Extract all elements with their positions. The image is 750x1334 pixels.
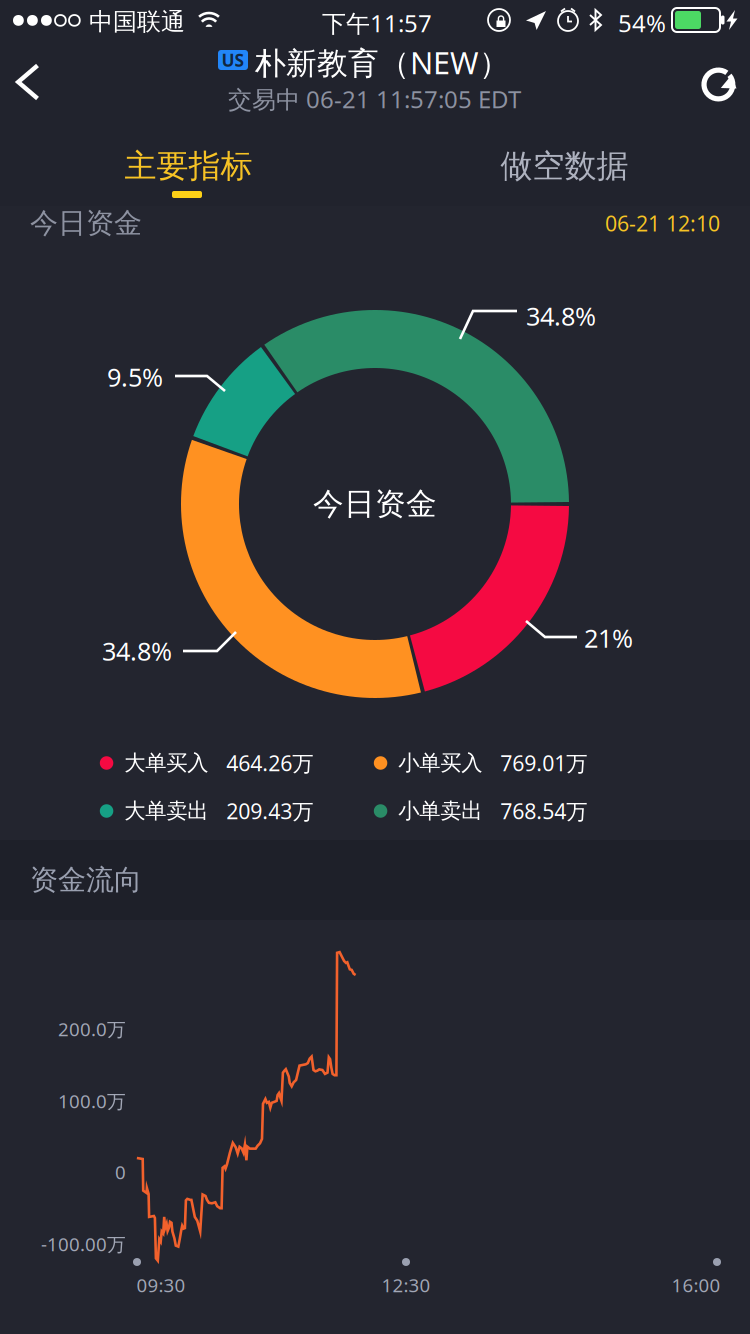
staticText: 小单买入 (398, 750, 482, 776)
staticText: 464.26万 (226, 749, 313, 777)
staticText: 0 (115, 1160, 126, 1184)
staticText: 9.5% (107, 360, 163, 394)
staticText: 54% (618, 7, 666, 39)
staticText: 大单卖出 (124, 798, 208, 824)
staticText: 200.0万 (58, 1017, 126, 1041)
staticText: 资金流向 (30, 863, 142, 897)
staticText: 下午11:57 (322, 7, 432, 39)
staticText: 09:30 (136, 1273, 185, 1297)
staticText: 主要指标 (124, 146, 252, 186)
button[interactable]: Refresh (688, 39, 750, 129)
staticText: 768.54万 (500, 797, 587, 825)
staticText: 做空数据 (500, 146, 628, 186)
button[interactable]: Back (0, 37, 56, 127)
staticText: 今日资金 (30, 206, 142, 240)
staticText: -100.00万 (41, 1232, 126, 1256)
staticText: 100.0万 (58, 1089, 126, 1113)
staticText: 16:00 (671, 1273, 720, 1297)
staticText: 朴新教育（NEW） (255, 42, 510, 83)
staticText: 34.8% (102, 634, 172, 668)
staticText: 今日资金 (313, 485, 437, 523)
staticText: US (221, 48, 244, 71)
staticText: 769.01万 (500, 749, 587, 777)
staticText: 中国联通 (89, 7, 185, 36)
button[interactable]: 做空数据 (377, 130, 750, 206)
staticText: 06-21 12:10 (605, 209, 720, 237)
staticText: 小单卖出 (398, 798, 482, 824)
staticText: 34.8% (526, 299, 596, 333)
staticText: 209.43万 (226, 797, 313, 825)
staticText: 交易中 06-21 11:57:05 EDT (228, 83, 521, 115)
staticText: 大单买入 (124, 750, 208, 776)
staticText: 21% (584, 621, 633, 655)
staticText: 12:30 (381, 1273, 430, 1297)
button[interactable]: 主要指标 (0, 130, 375, 206)
